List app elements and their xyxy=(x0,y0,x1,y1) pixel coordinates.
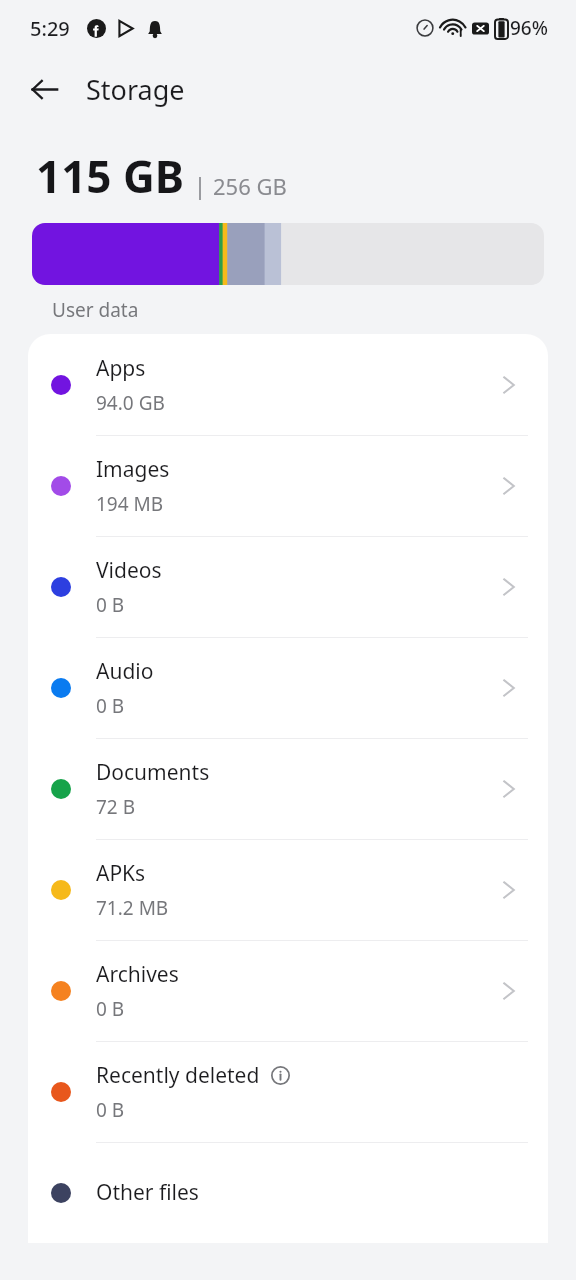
button[interactable]: APKs xyxy=(28,839,548,940)
staticText: Archives xyxy=(96,960,179,989)
button[interactable]: Videos xyxy=(28,536,548,637)
staticText: Other files xyxy=(96,1178,199,1207)
button[interactable]: Archives xyxy=(28,940,548,1041)
button[interactable]: Other files xyxy=(28,1142,548,1243)
staticText: Documents xyxy=(96,758,210,787)
staticText: 0 B xyxy=(96,592,125,618)
staticText: Storage xyxy=(86,71,185,108)
staticText: 71.2 MB xyxy=(96,895,169,921)
staticText: 72 B xyxy=(96,794,136,820)
staticText: 256 GB xyxy=(213,171,287,201)
staticText: Audio xyxy=(96,657,154,686)
button[interactable]: Recently deleted xyxy=(28,1041,548,1142)
staticText: 194 MB xyxy=(96,491,164,517)
staticText: 0 B xyxy=(96,996,125,1022)
staticText: Recently deleted xyxy=(96,1061,260,1090)
button[interactable]: Audio xyxy=(28,637,548,738)
staticText: 94.0 GB xyxy=(96,390,165,416)
staticText: 115 GB xyxy=(36,146,185,206)
button[interactable]: Back xyxy=(18,63,70,115)
staticText: 0 B xyxy=(96,1097,125,1123)
button[interactable]: Images xyxy=(28,435,548,536)
button[interactable]: Documents xyxy=(28,738,548,839)
other: Info xyxy=(271,1066,290,1085)
staticText: User data xyxy=(52,297,139,323)
staticText: 0 B xyxy=(96,693,125,719)
staticText: Apps xyxy=(96,354,146,383)
staticText: Images xyxy=(96,455,170,484)
button[interactable]: Apps xyxy=(28,334,548,435)
staticText: Videos xyxy=(96,556,162,585)
staticText: 5:29 xyxy=(30,15,70,42)
staticText: APKs xyxy=(96,859,146,888)
staticText: 96% xyxy=(510,15,548,41)
